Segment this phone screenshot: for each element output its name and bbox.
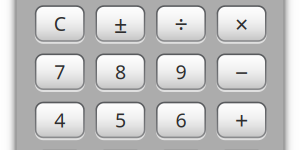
button[interactable]: Divide bbox=[156, 5, 206, 42]
staticText: − bbox=[235, 56, 248, 88]
staticText: ÷ bbox=[174, 8, 187, 40]
staticText: C bbox=[54, 10, 66, 37]
staticText: 9 bbox=[175, 58, 186, 85]
button[interactable]: 7 bbox=[35, 53, 85, 90]
staticText: + bbox=[235, 105, 248, 136]
button[interactable]: 6 bbox=[156, 102, 206, 138]
button[interactable]: 4 bbox=[35, 102, 85, 138]
button[interactable]: Plus minus bbox=[95, 5, 145, 42]
button[interactable]: Clear bbox=[35, 5, 85, 42]
staticText: 8 bbox=[115, 58, 126, 85]
staticText: 7 bbox=[54, 58, 65, 85]
button[interactable]: Multiply bbox=[217, 5, 267, 42]
staticText: 6 bbox=[175, 107, 186, 133]
staticText: × bbox=[235, 8, 248, 40]
staticText: 4 bbox=[54, 107, 65, 133]
staticText: 5 bbox=[115, 107, 126, 133]
button[interactable]: 8 bbox=[95, 53, 145, 90]
button[interactable]: 9 bbox=[156, 53, 206, 90]
button[interactable]: 5 bbox=[95, 102, 145, 138]
button[interactable]: Minus bbox=[217, 53, 267, 90]
staticText: ± bbox=[114, 8, 127, 40]
button[interactable]: Plus bbox=[217, 102, 267, 138]
